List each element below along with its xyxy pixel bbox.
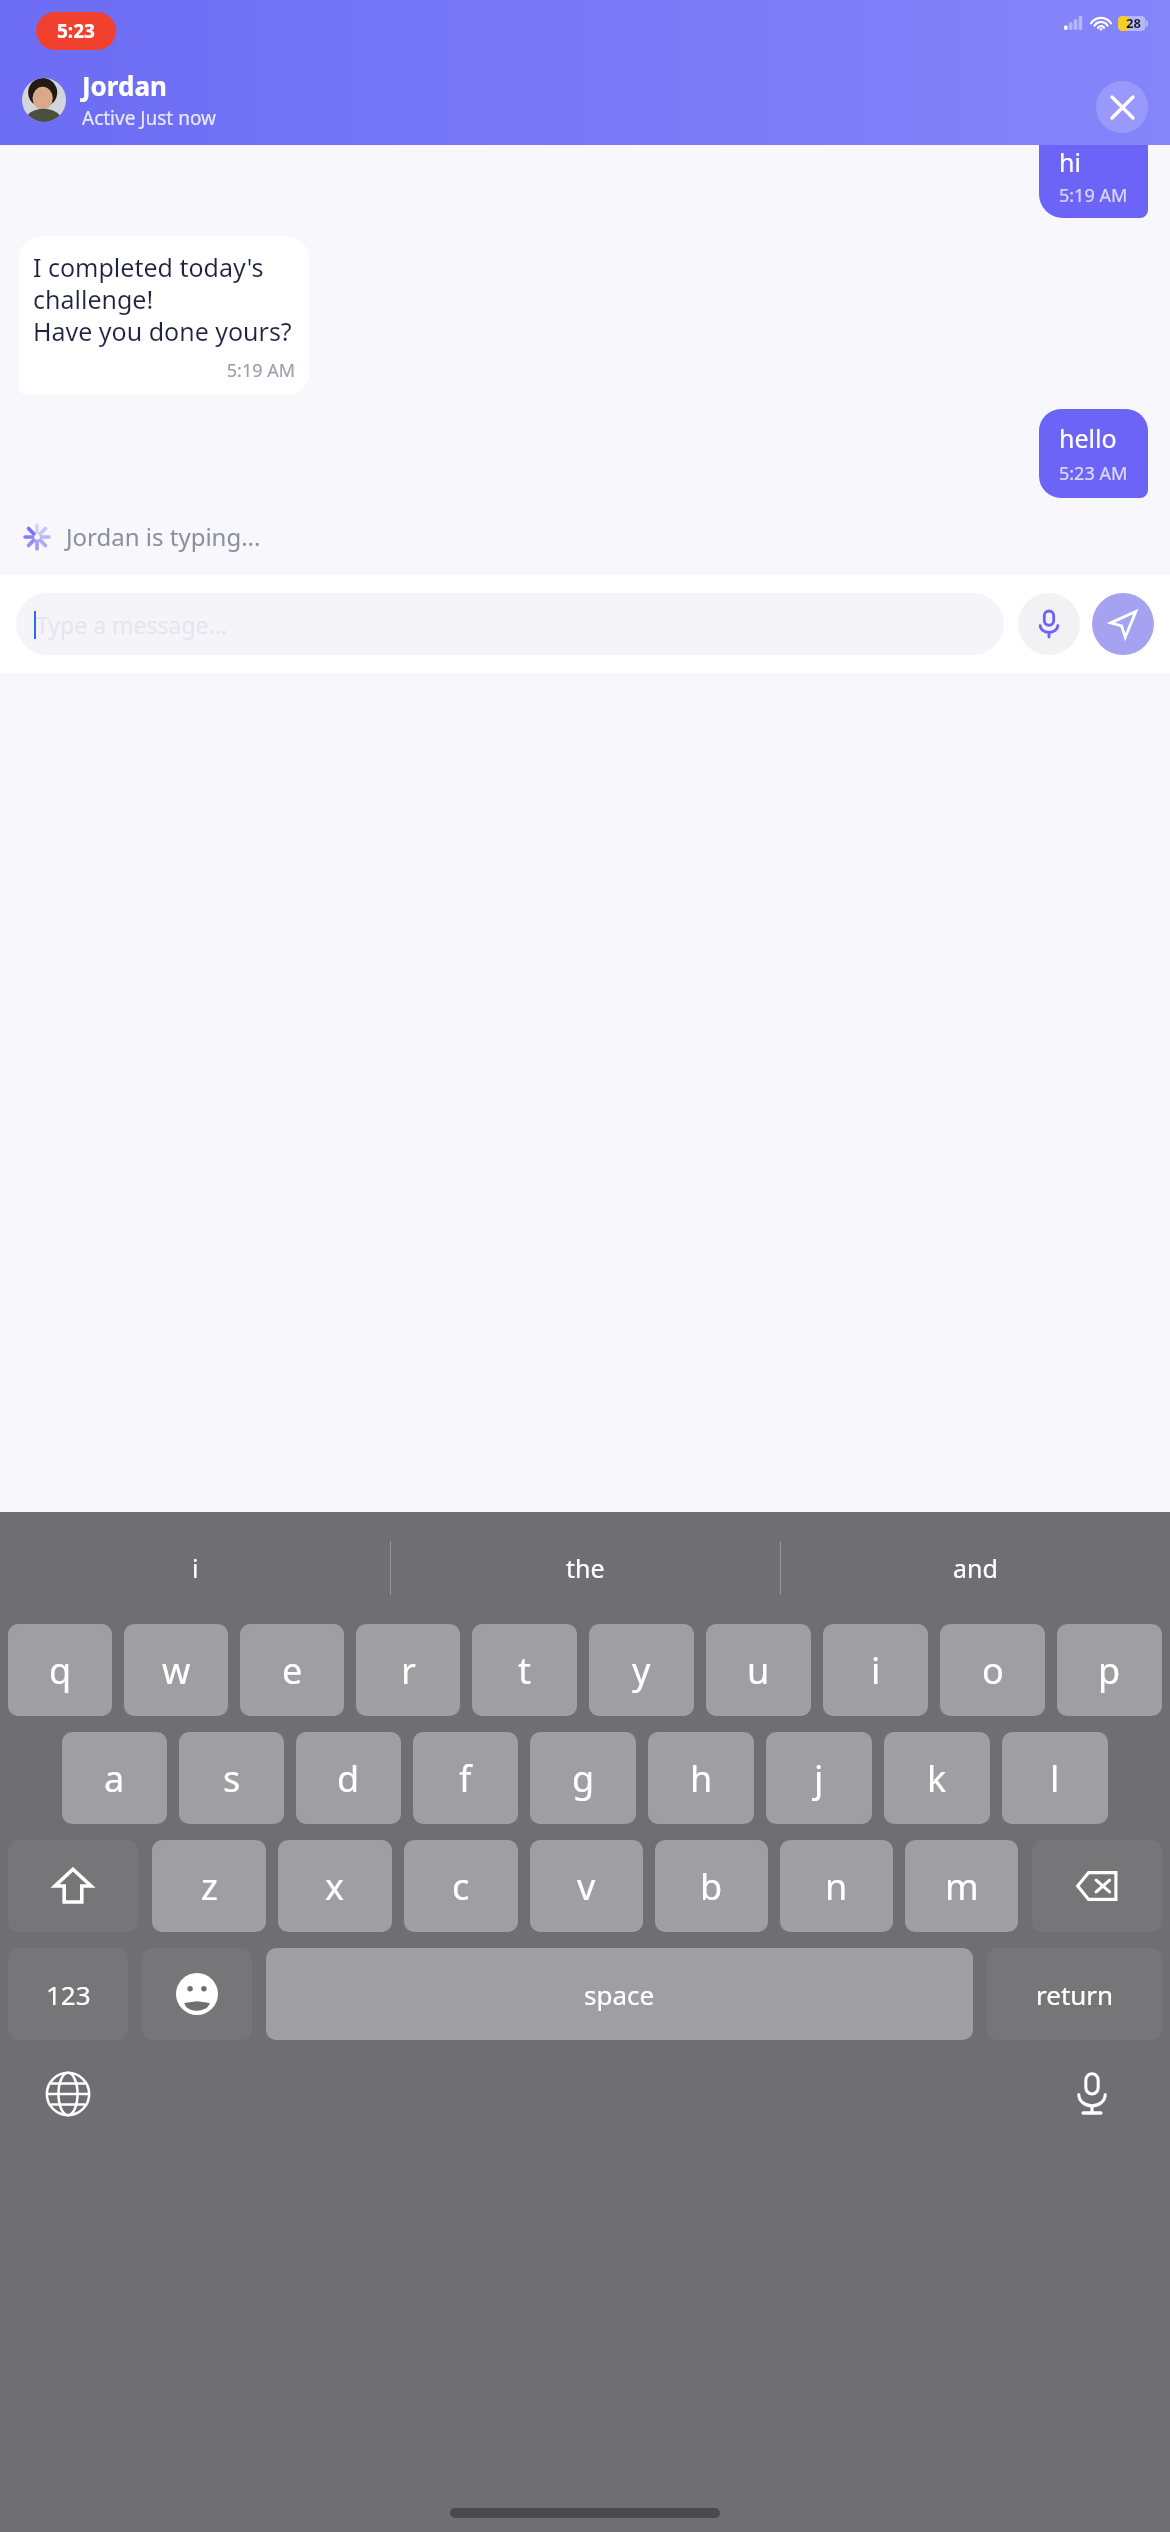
staticText: m	[945, 1862, 979, 1911]
staticText: 5:19 AM	[33, 358, 295, 383]
button[interactable]: i	[823, 1624, 928, 1716]
button[interactable]: Emoji	[142, 1948, 252, 2040]
staticText: r	[401, 1646, 416, 1695]
button[interactable]: i	[0, 1512, 390, 1624]
staticText: hi	[1059, 145, 1081, 179]
button[interactable]: o	[940, 1624, 1045, 1716]
button[interactable]: j	[766, 1732, 872, 1824]
staticText: e	[282, 1646, 303, 1695]
button[interactable]: Shift	[8, 1840, 138, 1932]
button[interactable]: w	[124, 1624, 228, 1716]
staticText: and	[953, 1551, 998, 1585]
button[interactable]: a	[62, 1732, 167, 1824]
staticText: b	[700, 1862, 723, 1911]
staticText: Jordan	[82, 68, 167, 103]
staticText: space	[584, 1977, 655, 2012]
button[interactable]: space	[266, 1948, 973, 2040]
button[interactable]: l	[1002, 1732, 1108, 1824]
button[interactable]: Type a message...	[16, 593, 1004, 655]
staticText: u	[747, 1646, 770, 1695]
button[interactable]: the	[391, 1512, 780, 1624]
button[interactable]: I completed today's challenge! Have you …	[19, 236, 309, 395]
button[interactable]: z	[152, 1840, 266, 1932]
button[interactable]: r	[356, 1624, 460, 1716]
button[interactable]: Jordan	[22, 68, 216, 131]
staticText: j	[814, 1754, 824, 1803]
button[interactable]: n	[780, 1840, 893, 1932]
staticText: w	[162, 1646, 191, 1695]
staticText: q	[49, 1646, 72, 1695]
button[interactable]: k	[884, 1732, 990, 1824]
staticText: n	[825, 1862, 848, 1911]
button[interactable]: v	[530, 1840, 643, 1932]
staticText: Type a message...	[36, 609, 228, 640]
staticText: s	[223, 1754, 241, 1803]
button[interactable]: q	[8, 1624, 112, 1716]
button[interactable]: h	[648, 1732, 754, 1824]
button[interactable]: c	[404, 1840, 518, 1932]
staticText: x	[325, 1862, 345, 1911]
staticText: p	[1098, 1646, 1121, 1695]
staticText: k	[927, 1754, 947, 1803]
button[interactable]: p	[1057, 1624, 1162, 1716]
button[interactable]: Send	[1092, 593, 1154, 655]
button[interactable]: e	[240, 1624, 344, 1716]
staticText: 123	[46, 1977, 91, 2012]
button[interactable]: 123	[8, 1948, 128, 2040]
staticText: t	[518, 1646, 531, 1695]
button[interactable]: hello	[1039, 409, 1148, 498]
button[interactable]: g	[530, 1732, 636, 1824]
staticText: 5:23 AM	[1059, 461, 1128, 486]
staticText: h	[690, 1754, 713, 1803]
button[interactable]: f	[413, 1732, 518, 1824]
button[interactable]: t	[472, 1624, 577, 1716]
staticText: f	[459, 1754, 472, 1803]
staticText: 5:19 AM	[1059, 183, 1128, 208]
button[interactable]: Close	[1096, 81, 1148, 133]
staticText: z	[201, 1862, 218, 1911]
staticText: a	[104, 1754, 125, 1803]
button[interactable]: Change keyboard language	[42, 2068, 94, 2120]
staticText: hello	[1059, 421, 1117, 455]
button[interactable]: return	[987, 1948, 1162, 2040]
button[interactable]: s	[179, 1732, 284, 1824]
button[interactable]: d	[296, 1732, 401, 1824]
staticText: Jordan is typing...	[66, 520, 261, 553]
staticText: the	[566, 1551, 605, 1585]
button[interactable]: and	[781, 1512, 1170, 1624]
staticText: return	[1036, 1977, 1114, 2012]
button[interactable]: hi	[1039, 145, 1148, 218]
button[interactable]: m	[905, 1840, 1018, 1932]
staticText: d	[337, 1754, 360, 1803]
staticText: c	[452, 1862, 470, 1911]
staticText: i	[871, 1646, 881, 1695]
staticText: 5:23	[57, 18, 95, 44]
staticText: i	[192, 1551, 199, 1585]
button[interactable]: b	[655, 1840, 768, 1932]
staticText: 28	[1126, 14, 1141, 32]
button[interactable]: x	[278, 1840, 392, 1932]
button[interactable]: Backspace	[1032, 1840, 1162, 1932]
staticText: o	[982, 1646, 1004, 1695]
staticText: v	[577, 1862, 596, 1911]
staticText: g	[572, 1754, 595, 1803]
staticText: Active Just now	[82, 105, 216, 131]
button[interactable]: u	[706, 1624, 811, 1716]
button[interactable]: Dictation	[1066, 2068, 1118, 2120]
button[interactable]: y	[589, 1624, 694, 1716]
staticText: y	[632, 1646, 651, 1695]
button[interactable]: Voice message	[1018, 593, 1080, 655]
staticText: I completed today's challenge! Have you …	[33, 250, 295, 348]
staticText: l	[1050, 1754, 1060, 1803]
